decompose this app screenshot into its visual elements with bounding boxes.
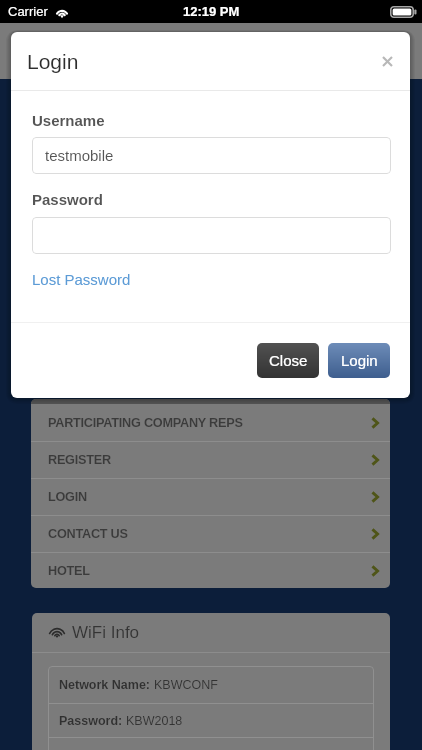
button[interactable]: REGISTER	[31, 442, 390, 478]
staticText: Username	[32, 112, 105, 129]
staticText: Login	[27, 50, 79, 73]
staticText: HOTEL	[48, 564, 90, 578]
staticText: Network Name:	[59, 678, 154, 692]
staticText: 12:19 PM	[183, 4, 240, 19]
staticText: Password	[32, 191, 103, 208]
staticText: Password:	[59, 714, 126, 728]
button[interactable]: PARTICIPATING COMPANY REPS	[31, 404, 390, 441]
button[interactable]: Login	[328, 343, 390, 378]
staticText: LOGIN	[48, 490, 87, 504]
button[interactable]: CONTACT US	[31, 516, 390, 552]
staticText: REGISTER	[48, 453, 111, 467]
button[interactable]: Lost Password	[32, 271, 131, 288]
staticText: PARTICIPATING COMPANY REPS	[48, 416, 243, 430]
staticText: CONTACT US	[48, 527, 128, 541]
staticText: Login	[341, 352, 378, 369]
staticText: KBW2018	[126, 714, 183, 728]
button[interactable]	[32, 217, 391, 254]
button[interactable]: testmobile	[32, 137, 391, 174]
button[interactable]: Close	[257, 343, 319, 378]
staticText: Carrier	[8, 4, 48, 19]
staticText: Close	[269, 352, 308, 369]
staticText: WiFi Info	[72, 623, 140, 642]
button[interactable]: LOGIN	[31, 479, 390, 515]
button[interactable]: Close dialog	[376, 50, 398, 72]
staticText: KBWCONF	[154, 678, 218, 692]
staticText: testmobile	[45, 147, 114, 164]
button[interactable]: HOTEL	[31, 553, 390, 588]
